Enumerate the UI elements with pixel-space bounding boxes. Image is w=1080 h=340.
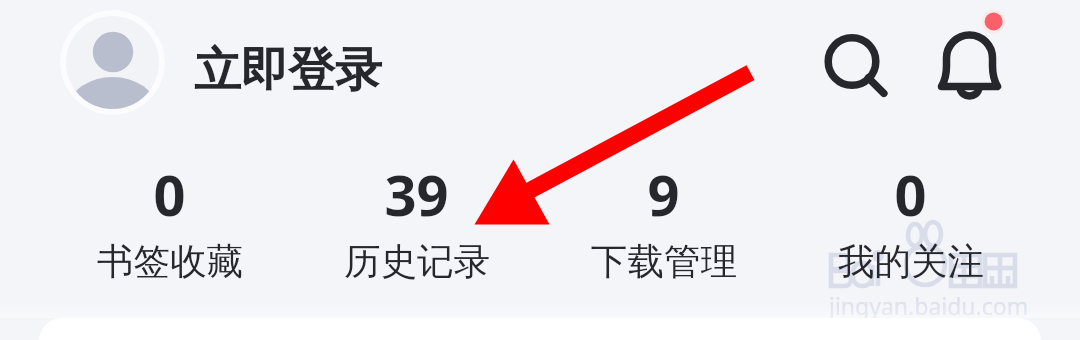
button[interactable]: 39 bbox=[293, 156, 540, 285]
button[interactable]: Search bbox=[803, 14, 900, 111]
staticText: 0 bbox=[153, 156, 186, 232]
staticText: 39 bbox=[384, 156, 449, 232]
staticText: 历史记录 bbox=[344, 239, 490, 285]
staticText: 书签收藏 bbox=[97, 239, 243, 285]
staticText: 立即登录 bbox=[194, 41, 382, 100]
button[interactable]: 0 bbox=[46, 156, 293, 285]
staticText: 0 bbox=[894, 156, 927, 232]
staticText: 9 bbox=[647, 156, 680, 232]
button[interactable]: 立即登录 bbox=[194, 41, 382, 100]
button[interactable]: Account avatar bbox=[60, 10, 165, 115]
button[interactable]: 9 bbox=[540, 156, 787, 285]
button[interactable]: Notifications bbox=[922, 0, 1022, 100]
staticText: 下载管理 bbox=[591, 239, 737, 285]
staticText: jingyan.baidu.com bbox=[829, 290, 1029, 321]
staticText: 我的关注 bbox=[838, 239, 984, 285]
button[interactable]: 0 bbox=[787, 156, 1034, 285]
